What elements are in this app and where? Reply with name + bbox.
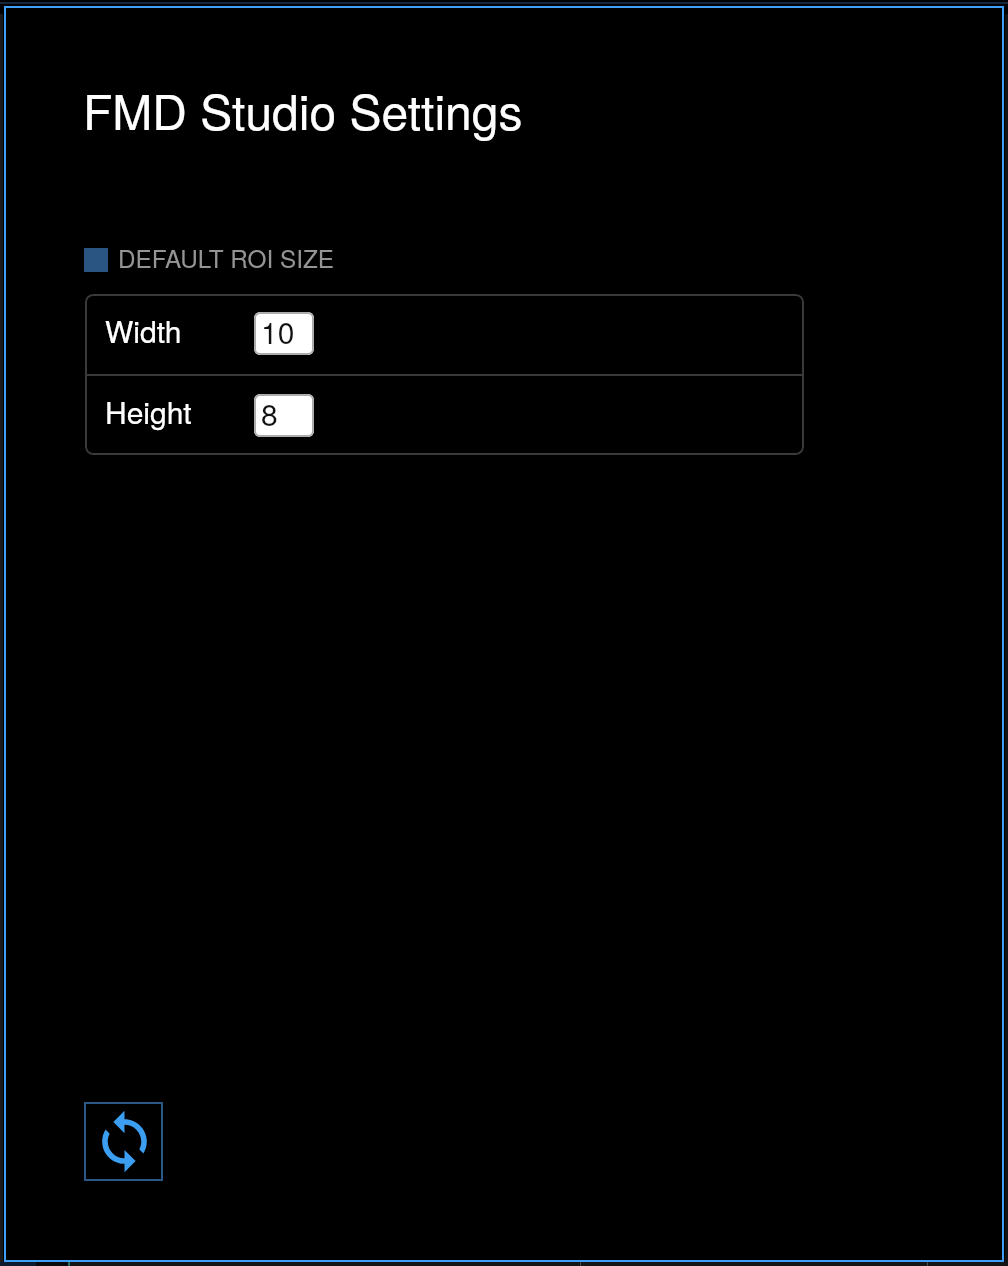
staticText: 8 <box>261 394 278 435</box>
staticText: Width <box>105 309 182 352</box>
staticText: FMD Studio Settings <box>83 75 523 144</box>
button[interactable]: Reset to default ROI size <box>84 1102 163 1181</box>
button[interactable]: 8 <box>254 394 314 437</box>
button[interactable]: 10 <box>254 312 314 355</box>
staticText: Height <box>105 390 192 433</box>
staticText: 10 <box>261 312 295 353</box>
button[interactable]: Width <box>85 294 804 374</box>
button[interactable]: Height <box>85 376 804 455</box>
staticText: DEFAULT ROI SIZE <box>118 240 334 275</box>
